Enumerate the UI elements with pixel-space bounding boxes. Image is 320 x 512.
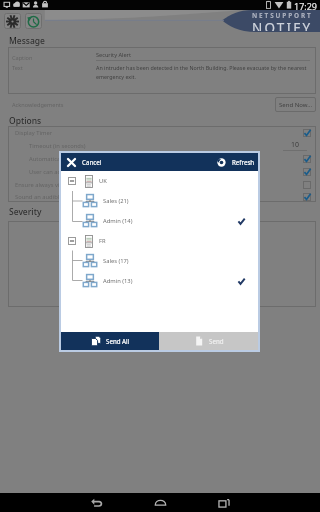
button[interactable]: Display Timer bbox=[8, 126, 316, 139]
button[interactable]: UK bbox=[61, 171, 258, 191]
button[interactable]: Recent apps bbox=[192, 493, 256, 512]
staticText: Ensure always visible bbox=[15, 181, 73, 189]
staticText: Options bbox=[9, 115, 42, 126]
staticText: Cancel bbox=[82, 158, 102, 166]
staticText: Send bbox=[209, 337, 224, 345]
staticText: FR bbox=[99, 237, 106, 245]
staticText: UK bbox=[99, 177, 107, 185]
button[interactable]: Sales (21) bbox=[61, 191, 258, 211]
staticText: Automatically close message bbox=[29, 155, 108, 163]
button[interactable]: Automatically close message bbox=[8, 152, 316, 165]
button[interactable]: FR bbox=[61, 231, 258, 251]
staticText: Caption bbox=[12, 54, 96, 62]
staticText: User can acknowledge message bbox=[29, 168, 116, 176]
button[interactable]: Back bbox=[64, 493, 128, 512]
staticText: Display Timer bbox=[15, 129, 53, 137]
button[interactable]: Admin (14) bbox=[61, 211, 258, 231]
staticText: Sales (17) bbox=[103, 257, 129, 265]
staticText: Send Now... bbox=[279, 101, 313, 109]
staticText: Sound an audible tone bbox=[15, 193, 77, 201]
button[interactable]: Cancel bbox=[61, 153, 108, 171]
button[interactable]: User can acknowledge message bbox=[8, 165, 316, 178]
staticText: Sales (21) bbox=[103, 197, 129, 205]
button[interactable]: Refresh bbox=[211, 153, 258, 171]
staticText: Refresh bbox=[232, 158, 255, 166]
staticText: Acknowledgements bbox=[12, 101, 64, 109]
button[interactable]: Ensure always visible bbox=[8, 178, 316, 191]
button[interactable]: History bbox=[25, 13, 42, 29]
staticText: Timeout (in seconds) bbox=[29, 142, 86, 150]
staticText: Severity bbox=[9, 206, 42, 218]
button[interactable]: Admin (13) bbox=[61, 271, 258, 291]
staticText: Message bbox=[9, 35, 45, 47]
button[interactable]: Send All bbox=[61, 332, 159, 350]
button[interactable]: Send bbox=[159, 332, 258, 350]
staticText: NOTIFY bbox=[252, 19, 313, 31]
button[interactable]: Home bbox=[128, 493, 192, 512]
button[interactable]: Send Now... bbox=[275, 97, 316, 112]
staticText: 10 bbox=[291, 140, 300, 150]
staticText: An intruder has been detected in the Nor… bbox=[96, 64, 312, 81]
staticText: Send All bbox=[106, 337, 130, 345]
button[interactable]: Settings bbox=[4, 13, 21, 29]
button[interactable]: Sales (17) bbox=[61, 251, 258, 271]
staticText: Security Alert bbox=[96, 51, 131, 59]
button[interactable]: Sound an audible tone bbox=[8, 191, 316, 202]
staticText: Admin (13) bbox=[103, 277, 133, 285]
staticText: NETSUPPORT bbox=[252, 11, 313, 20]
staticText: 17:29 bbox=[294, 0, 318, 10]
staticText: Admin (14) bbox=[103, 217, 133, 225]
